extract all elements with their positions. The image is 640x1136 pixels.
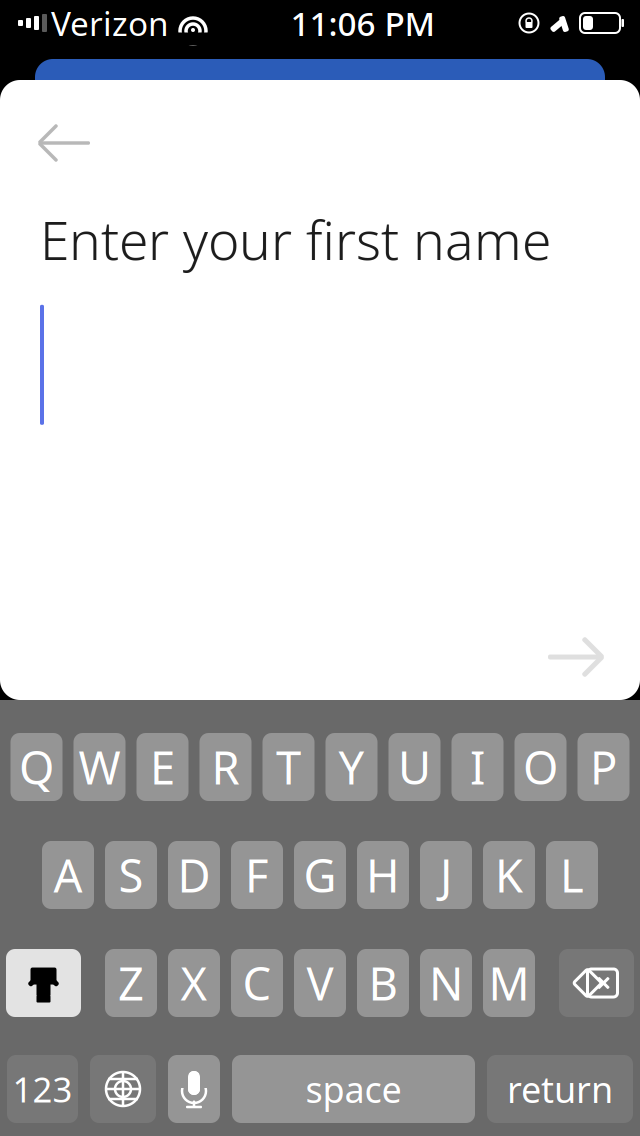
button[interactable]: Next xyxy=(532,622,618,692)
staticText: C xyxy=(242,953,271,1013)
staticText: O xyxy=(523,737,558,797)
staticText: S xyxy=(118,845,143,905)
button[interactable]: M xyxy=(483,949,535,1017)
staticText: L xyxy=(560,845,584,905)
button[interactable]: A xyxy=(42,841,94,909)
button[interactable]: I xyxy=(451,733,503,801)
staticText: B xyxy=(368,953,397,1013)
staticText: Z xyxy=(118,953,144,1013)
button[interactable]: Shift xyxy=(6,949,81,1017)
button[interactable]: G xyxy=(294,841,346,909)
staticText: P xyxy=(590,737,617,797)
button[interactable]: O xyxy=(514,733,566,801)
staticText: A xyxy=(53,845,82,905)
button[interactable]: E xyxy=(136,733,188,801)
button[interactable]: U xyxy=(388,733,440,801)
button[interactable]: F xyxy=(231,841,283,909)
button[interactable]: C xyxy=(231,949,283,1017)
staticText: N xyxy=(429,953,463,1013)
button[interactable]: J xyxy=(420,841,472,909)
button[interactable]: S xyxy=(105,841,157,909)
button[interactable]: Q xyxy=(10,733,62,801)
staticText: F xyxy=(245,845,269,905)
button[interactable]: space xyxy=(232,1055,475,1123)
button[interactable]: 123 xyxy=(7,1055,78,1123)
button[interactable]: Delete xyxy=(559,949,634,1017)
staticText: M xyxy=(488,953,529,1013)
button[interactable]: return xyxy=(487,1055,633,1123)
staticText: X xyxy=(180,953,207,1013)
button[interactable]: Y xyxy=(325,733,377,801)
button[interactable]: L xyxy=(546,841,598,909)
staticText: I xyxy=(470,737,485,797)
button[interactable]: Dictation xyxy=(168,1055,220,1123)
button[interactable]: P xyxy=(577,733,629,801)
staticText: U xyxy=(398,737,431,797)
staticText: E xyxy=(150,737,175,797)
staticText: Verizon xyxy=(51,1,169,45)
button[interactable]: K xyxy=(483,841,535,909)
button[interactable]: W xyxy=(73,733,125,801)
button[interactable]: H xyxy=(357,841,409,909)
button[interactable]: Next keyboard xyxy=(90,1055,156,1123)
staticText: R xyxy=(211,737,239,797)
button[interactable]: Back xyxy=(28,112,102,174)
button[interactable]: T xyxy=(262,733,314,801)
button[interactable]: V xyxy=(294,949,346,1017)
staticText: Q xyxy=(19,737,54,797)
staticText: Enter your first name xyxy=(40,204,551,275)
button[interactable]: Z xyxy=(105,949,157,1017)
button[interactable]: R xyxy=(199,733,251,801)
staticText: K xyxy=(495,845,523,905)
button[interactable]: B xyxy=(357,949,409,1017)
staticText: V xyxy=(306,953,333,1013)
staticText: T xyxy=(276,737,301,797)
staticText: space xyxy=(305,1065,401,1113)
button[interactable]: X xyxy=(168,949,220,1017)
staticText: D xyxy=(177,845,210,905)
button[interactable]: N xyxy=(420,949,472,1017)
staticText: W xyxy=(78,737,120,797)
staticText: Y xyxy=(338,737,364,797)
button[interactable]: D xyxy=(168,841,220,909)
staticText: 11:06 PM xyxy=(290,1,435,45)
staticText: H xyxy=(366,845,400,905)
staticText: 123 xyxy=(12,1066,72,1112)
staticText: return xyxy=(507,1065,613,1113)
staticText: G xyxy=(303,845,336,905)
staticText: J xyxy=(440,845,452,905)
